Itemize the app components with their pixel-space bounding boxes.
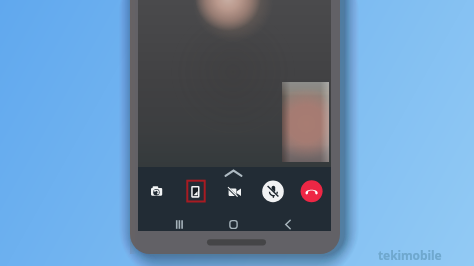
button[interactable]: More options [219,166,248,179]
staticText: tekimobile [378,247,442,263]
button[interactable]: Switch camera [144,179,169,205]
button[interactable]: Recent apps [162,211,196,231]
button[interactable]: Share screen [183,178,209,206]
button[interactable]: Mute microphone [261,180,285,204]
button[interactable]: Back [271,211,305,231]
button[interactable]: Home [217,211,251,231]
button[interactable]: End call [300,180,324,204]
button[interactable]: Turn camera off [222,179,247,205]
